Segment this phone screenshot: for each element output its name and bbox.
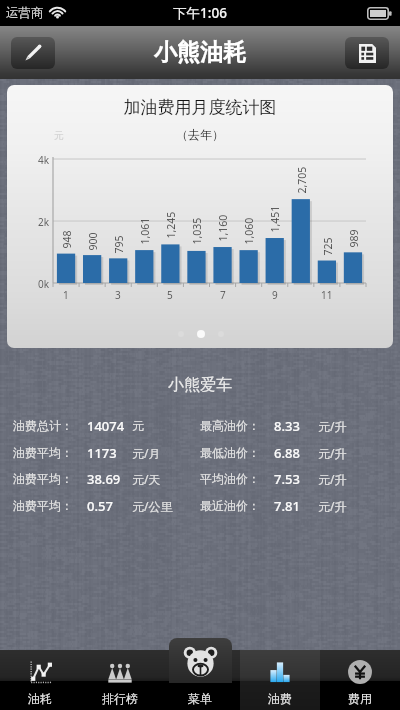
staticText: 油费总计： <box>13 418 73 433</box>
staticText: 989 <box>346 228 360 247</box>
staticText: 元/升 <box>318 418 347 434</box>
staticText: 1,061 <box>137 217 151 244</box>
staticText: 1,160 <box>215 214 229 241</box>
staticText: 油耗 <box>28 691 52 706</box>
staticText: 元 <box>132 418 144 433</box>
staticText: 最高油价： <box>200 418 260 433</box>
staticText: 1 <box>63 288 69 302</box>
staticText: 小熊爱车 <box>0 375 400 395</box>
button[interactable]: Records <box>345 37 389 69</box>
staticText: 4k <box>38 153 50 167</box>
staticText: 油费平均： <box>13 498 73 513</box>
staticText: 运营商 <box>6 5 44 21</box>
staticText: 2,705 <box>294 166 308 193</box>
button[interactable]: 排行榜 <box>80 650 160 710</box>
staticText: 元/升 <box>318 498 347 514</box>
staticText: 2k <box>38 215 50 229</box>
button[interactable]: Edit <box>11 37 55 69</box>
staticText: 元/天 <box>132 471 161 487</box>
button[interactable]: 菜单 <box>169 638 232 683</box>
staticText: 油费 <box>268 691 292 706</box>
staticText: 元/升 <box>318 471 347 487</box>
staticText: 费用 <box>348 691 372 706</box>
staticText: 1,035 <box>189 217 203 244</box>
staticText: 最低油价： <box>200 445 260 460</box>
staticText: 加油费用月度统计图 <box>7 97 393 118</box>
button[interactable]: 费用 <box>320 650 400 710</box>
staticText: （去年） <box>7 127 393 142</box>
staticText: 9 <box>272 288 278 302</box>
staticText: 6.88 <box>274 444 300 462</box>
staticText: 8.33 <box>274 417 300 435</box>
staticText: 948 <box>59 229 73 248</box>
staticText: 元/公里 <box>132 498 173 514</box>
button[interactable]: 油费 <box>240 650 320 710</box>
staticText: 38.69 <box>87 470 121 488</box>
staticText: 油费平均： <box>13 471 73 486</box>
staticText: 3 <box>115 288 121 302</box>
staticText: 5 <box>167 288 173 302</box>
staticText: 1173 <box>87 444 117 462</box>
staticText: 11 <box>321 288 333 302</box>
staticText: 0.57 <box>87 497 113 515</box>
staticText: 1,245 <box>163 211 177 238</box>
staticText: 下午1:06 <box>0 4 400 22</box>
staticText: 平均油价： <box>200 471 260 486</box>
button[interactable]: 菜单 <box>160 650 240 710</box>
staticText: 最近油价： <box>200 498 260 513</box>
button[interactable]: 油耗 <box>0 650 80 710</box>
staticText: 725 <box>320 236 334 255</box>
staticText: 900 <box>85 231 99 250</box>
staticText: 菜单 <box>188 691 212 706</box>
staticText: 油费平均： <box>13 445 73 460</box>
staticText: 7.81 <box>274 497 300 515</box>
staticText: 元/升 <box>318 445 347 461</box>
staticText: 1,451 <box>267 205 281 232</box>
staticText: 元 <box>54 129 64 142</box>
staticText: 14074 <box>87 417 125 435</box>
staticText: 元/月 <box>132 445 161 461</box>
staticText: 7.53 <box>274 470 300 488</box>
staticText: 小熊油耗 <box>154 38 246 67</box>
staticText: 7 <box>220 288 226 302</box>
staticText: 排行榜 <box>102 691 138 706</box>
staticText: 0k <box>38 277 50 291</box>
staticText: 1,060 <box>241 217 255 244</box>
staticText: 795 <box>111 234 125 253</box>
